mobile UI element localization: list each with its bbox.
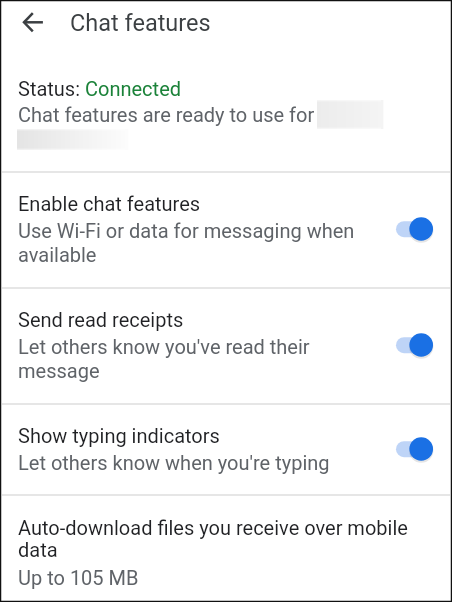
staticText: Use Wi-Fi or data for messaging when ava… (18, 219, 370, 267)
staticText: Status: (18, 77, 85, 100)
staticText: Connected (85, 77, 182, 100)
button[interactable]: Toggle setting (385, 427, 433, 471)
staticText: Let others know you've read their messag… (18, 335, 370, 383)
staticText: Send read receipts (18, 308, 370, 331)
button[interactable]: Auto-download files you receive over mob… (2, 496, 450, 600)
button[interactable]: Enable chat features (2, 173, 450, 287)
staticText: Up to 105 MB (18, 566, 416, 589)
button[interactable]: Toggle setting (385, 323, 433, 367)
staticText: Let others know when you're typing (18, 451, 370, 474)
button[interactable]: Send read receipts (2, 289, 450, 403)
staticText: Show typing indicators (18, 424, 370, 447)
staticText: Chat features (70, 9, 211, 37)
button[interactable]: Toggle setting (385, 207, 433, 251)
staticText: Chat features are ready to use for (18, 103, 315, 126)
staticText: Enable chat features (18, 192, 370, 215)
button[interactable]: Back (10, 8, 44, 42)
button[interactable]: Show typing indicators (2, 405, 450, 494)
staticText: Auto-download files you receive over mob… (18, 516, 416, 562)
